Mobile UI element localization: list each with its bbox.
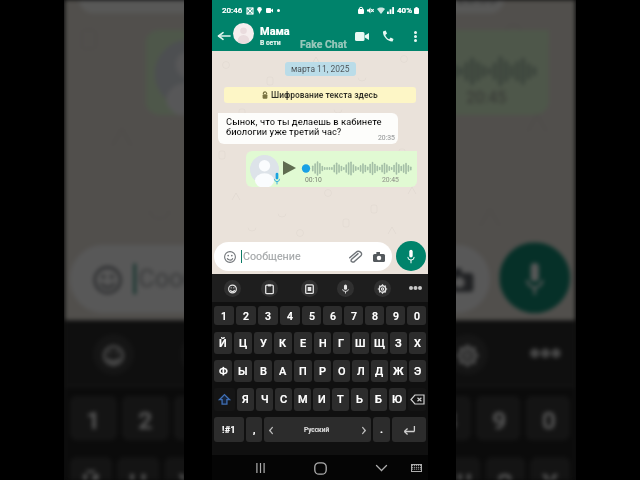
- button[interactable]: И: [313, 388, 330, 411]
- button[interactable]: А: [274, 360, 292, 382]
- button[interactable]: 5: [302, 306, 321, 325]
- button[interactable]: Русский: [264, 417, 371, 442]
- button[interactable]: Attach: [348, 251, 362, 263]
- button[interactable]: 0: [407, 306, 426, 325]
- button[interactable]: Э: [409, 360, 426, 382]
- button[interactable]: Voice input: [332, 275, 358, 301]
- button[interactable]: Hide keyboard: [370, 457, 392, 479]
- button[interactable]: Clipboard: [256, 275, 282, 301]
- button[interactable]: Т: [332, 388, 349, 411]
- button[interactable]: Л: [352, 360, 369, 382]
- button[interactable]: Home: [309, 457, 331, 479]
- button[interactable]: Г: [333, 332, 350, 354]
- button[interactable]: Н: [306, 457, 346, 480]
- button[interactable]: 2: [236, 306, 256, 325]
- button[interactable]: 1: [70, 396, 117, 441]
- button[interactable]: Ш: [395, 457, 436, 480]
- button[interactable]: Ф: [214, 360, 232, 382]
- button[interactable]: Й: [214, 332, 232, 354]
- button[interactable]: 3: [258, 306, 278, 325]
- button[interactable]: Х: [409, 332, 426, 354]
- button[interactable]: Video call: [353, 27, 371, 45]
- button[interactable]: [214, 388, 235, 411]
- button[interactable]: 1: [214, 306, 234, 325]
- button[interactable]: Ш: [352, 332, 369, 354]
- button[interactable]: Stickers: [296, 275, 322, 301]
- button[interactable]: Щ: [440, 457, 480, 480]
- button[interactable]: М: [294, 388, 311, 411]
- button[interactable]: Сынок, что ты делаешь в кабинете биологи…: [79, 0, 504, 13]
- button[interactable]: 9: [476, 396, 521, 441]
- button[interactable]: В: [254, 360, 272, 382]
- button[interactable]: 7: [344, 306, 363, 325]
- button[interactable]: Ч: [256, 388, 273, 411]
- button[interactable]: More options: [406, 27, 424, 45]
- button[interactable]: Back: [215, 27, 233, 45]
- button[interactable]: Б: [370, 388, 387, 411]
- button[interactable]: О: [333, 360, 350, 382]
- button[interactable]: Camera: [373, 252, 385, 262]
- button[interactable]: Emoji: [82, 323, 143, 384]
- button[interactable]: У: [254, 332, 272, 354]
- button[interactable]: У: [164, 457, 207, 480]
- button[interactable]: Ц: [234, 332, 252, 354]
- button[interactable]: Р: [314, 360, 331, 382]
- button[interactable]: Щ: [371, 332, 388, 354]
- button[interactable]: 6: [323, 306, 342, 325]
- button[interactable]: Switch keyboard: [405, 457, 427, 479]
- button[interactable]: Emoji: [219, 275, 245, 301]
- button[interactable]: Play voice message: [145, 30, 549, 115]
- button[interactable]: 8: [426, 396, 471, 441]
- button[interactable]: Record voice message: [396, 241, 426, 271]
- button[interactable]: К: [274, 332, 292, 354]
- button[interactable]: Й: [70, 457, 112, 480]
- button[interactable]: Е: [259, 457, 301, 480]
- button[interactable]: П: [294, 360, 312, 382]
- button[interactable]: Сообщение: [214, 242, 392, 271]
- button[interactable]: More options: [402, 275, 428, 301]
- button[interactable]: Н: [314, 332, 331, 354]
- button[interactable]: 0: [525, 396, 570, 441]
- button[interactable]: Voice input: [348, 323, 410, 384]
- button[interactable]: [408, 388, 426, 411]
- button[interactable]: Ы: [234, 360, 252, 382]
- button[interactable]: More options: [513, 323, 575, 384]
- button[interactable]: Settings: [369, 275, 395, 301]
- button[interactable]: Ю: [389, 388, 406, 411]
- button[interactable]: 4: [280, 306, 300, 325]
- button[interactable]: ,: [246, 417, 262, 442]
- button[interactable]: Clipboard: [169, 323, 230, 384]
- button[interactable]: Г: [351, 457, 391, 480]
- button[interactable]: 2: [122, 396, 169, 441]
- button[interactable]: 6: [327, 396, 372, 441]
- button[interactable]: Ж: [390, 360, 407, 382]
- button[interactable]: С: [275, 388, 292, 411]
- button[interactable]: Д: [371, 360, 388, 382]
- button[interactable]: 9: [386, 306, 405, 325]
- button[interactable]: 5: [277, 396, 322, 441]
- button[interactable]: Ь: [351, 388, 368, 411]
- button[interactable]: 3: [174, 396, 221, 441]
- button[interactable]: Stickers: [263, 323, 325, 384]
- button[interactable]: Х: [530, 457, 570, 480]
- button[interactable]: Record voice message: [499, 242, 570, 313]
- button[interactable]: Play voice message: [246, 151, 417, 187]
- button[interactable]: 4: [226, 396, 273, 441]
- button[interactable]: Camera: [445, 268, 473, 292]
- button[interactable]: З: [485, 457, 525, 480]
- button[interactable]: Attach: [386, 266, 419, 294]
- button[interactable]: 8: [365, 306, 384, 325]
- button[interactable]: Play voice message: [283, 161, 296, 175]
- button[interactable]: Сообщение: [70, 245, 490, 313]
- button[interactable]: Ц: [117, 457, 159, 480]
- button[interactable]: Settings: [436, 323, 497, 384]
- button[interactable]: Сынок, что ты делаешь в кабинете биологи…: [218, 113, 398, 144]
- button[interactable]: З: [390, 332, 407, 354]
- button[interactable]: .: [373, 417, 390, 442]
- button[interactable]: Е: [294, 332, 312, 354]
- button[interactable]: 7: [377, 396, 421, 441]
- button[interactable]: Я: [237, 388, 254, 411]
- button[interactable]: !#1: [214, 417, 244, 442]
